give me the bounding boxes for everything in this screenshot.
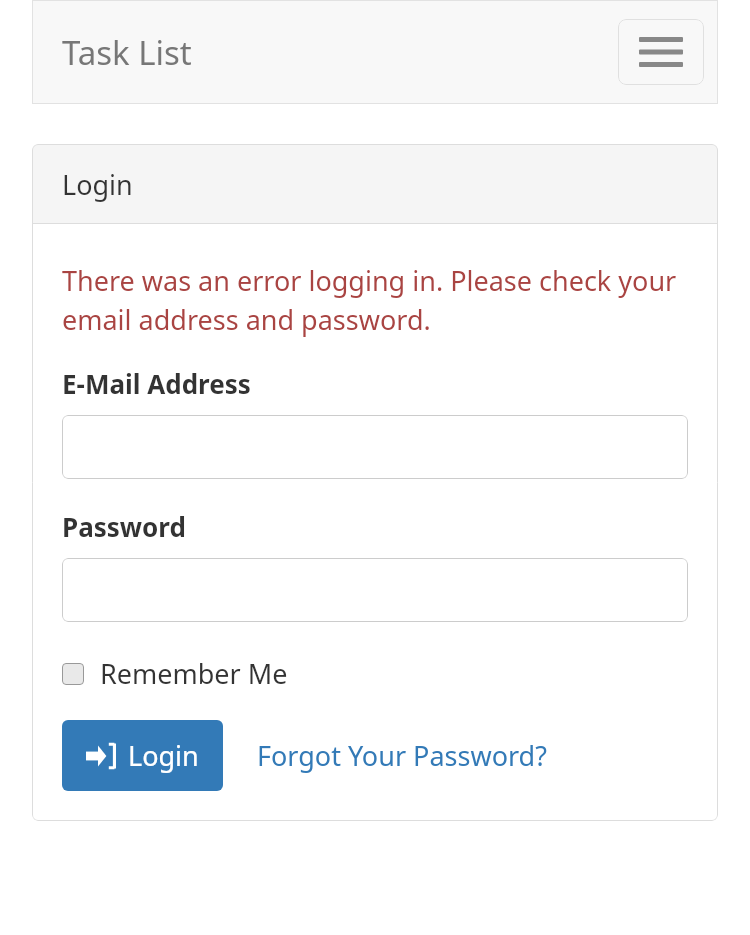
button[interactable]: Login <box>62 720 223 791</box>
button[interactable] <box>62 558 688 622</box>
staticText: Login <box>128 737 199 774</box>
staticText: There was an error logging in. Please ch… <box>62 262 688 338</box>
button[interactable]: Toggle navigation <box>618 19 704 85</box>
button[interactable]: Task List <box>62 30 192 75</box>
staticText: Login <box>62 166 133 203</box>
button[interactable]: Forgot Your Password? <box>257 737 547 774</box>
button[interactable]: Remember Me <box>62 655 296 692</box>
staticText: Remember Me <box>100 655 288 692</box>
staticText: Password <box>62 509 186 544</box>
staticText: Forgot Your Password? <box>257 737 547 774</box>
button[interactable] <box>62 415 688 479</box>
staticText: Task List <box>62 30 192 75</box>
staticText: E-Mail Address <box>62 366 251 401</box>
